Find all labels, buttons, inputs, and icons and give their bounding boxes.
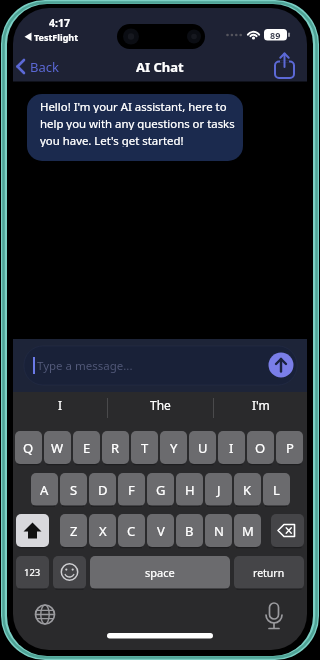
- staticText: Q: [23, 439, 34, 457]
- staticText: 4:17: [49, 16, 70, 30]
- button[interactable]: [16, 514, 49, 547]
- button[interactable]: H: [176, 473, 203, 506]
- staticText: F: [128, 481, 135, 499]
- staticText: I: [58, 397, 63, 413]
- button[interactable]: R: [102, 431, 129, 464]
- button[interactable]: J: [205, 473, 232, 506]
- button[interactable]: N: [205, 514, 232, 547]
- staticText: U: [198, 439, 208, 457]
- button[interactable]: Y: [160, 431, 187, 464]
- staticText: V: [157, 522, 165, 540]
- staticText: S: [70, 481, 78, 499]
- staticText: AI Chat: [136, 58, 184, 75]
- button[interactable]: [265, 52, 297, 84]
- staticText: A: [40, 481, 49, 499]
- staticText: Back: [30, 58, 59, 75]
- button[interactable]: P: [276, 431, 303, 464]
- staticText: G: [156, 481, 166, 499]
- staticText: T: [141, 439, 149, 457]
- staticText: D: [98, 481, 108, 499]
- button[interactable]: D: [89, 473, 116, 506]
- staticText: Y: [170, 439, 178, 457]
- staticText: Hello! I'm your AI assistant, here to: [40, 99, 227, 113]
- staticText: I: [229, 439, 234, 457]
- staticText: 89: [270, 29, 281, 41]
- button[interactable]: M: [234, 514, 261, 547]
- staticText: The: [150, 397, 171, 413]
- button[interactable]: W: [44, 431, 71, 464]
- button[interactable]: C: [118, 514, 145, 547]
- button[interactable]: V: [147, 514, 174, 547]
- staticText: H: [185, 481, 195, 499]
- staticText: J: [217, 481, 221, 499]
- button[interactable]: E: [73, 431, 100, 464]
- button[interactable]: K: [234, 473, 261, 506]
- button[interactable]: [271, 514, 304, 547]
- button[interactable]: [259, 600, 289, 630]
- button[interactable]: L: [263, 473, 290, 506]
- staticText: B: [185, 522, 194, 540]
- staticText: R: [111, 439, 120, 457]
- staticText: Type a message...: [37, 358, 133, 374]
- button[interactable]: I'm: [214, 396, 307, 413]
- button[interactable]: I: [218, 431, 245, 464]
- button[interactable]: Back: [30, 58, 74, 75]
- button[interactable]: 123: [16, 556, 49, 589]
- button[interactable]: O: [247, 431, 274, 464]
- button[interactable]: space: [90, 556, 230, 589]
- staticText: you have. Let's get started!: [40, 133, 184, 147]
- button[interactable]: X: [89, 514, 116, 547]
- staticText: M: [242, 522, 254, 540]
- button[interactable]: F: [118, 473, 145, 506]
- button[interactable]: G: [147, 473, 174, 506]
- button[interactable]: [268, 352, 294, 378]
- button[interactable]: T: [131, 431, 158, 464]
- staticText: I'm: [252, 397, 270, 413]
- staticText: W: [51, 439, 64, 457]
- button[interactable]: return: [234, 556, 304, 589]
- button[interactable]: [53, 556, 86, 589]
- staticText: return: [253, 566, 285, 580]
- button[interactable]: Type a message...: [37, 357, 197, 374]
- button[interactable]: [30, 600, 60, 630]
- staticText: X: [99, 522, 107, 540]
- button[interactable]: Q: [15, 431, 42, 464]
- staticText: 123: [24, 566, 41, 579]
- staticText: K: [243, 481, 252, 499]
- button[interactable]: The: [108, 396, 213, 413]
- button[interactable]: Z: [60, 514, 87, 547]
- staticText: L: [273, 481, 280, 499]
- staticText: E: [83, 439, 91, 457]
- staticText: help you with any questions or tasks: [40, 116, 235, 130]
- button[interactable]: A: [31, 473, 58, 506]
- staticText: P: [286, 439, 294, 457]
- staticText: C: [127, 522, 136, 540]
- button[interactable]: I: [13, 396, 107, 413]
- button[interactable]: S: [60, 473, 87, 506]
- staticText: Z: [70, 522, 78, 540]
- staticText: TestFlight: [34, 31, 79, 43]
- staticText: O: [255, 439, 266, 457]
- staticText: space: [145, 565, 175, 580]
- button[interactable]: U: [189, 431, 216, 464]
- button[interactable]: B: [176, 514, 203, 547]
- staticText: N: [214, 522, 224, 540]
